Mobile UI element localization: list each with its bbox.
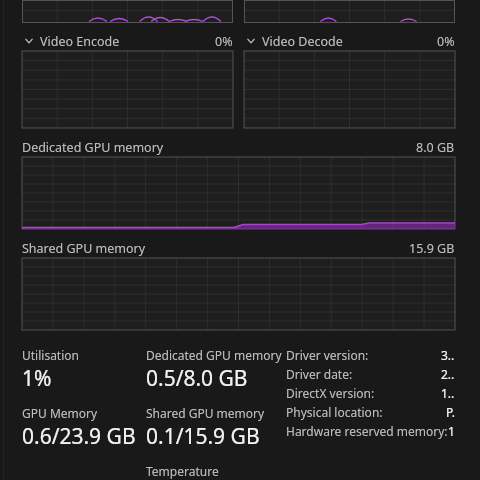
staticText: Temperature [146,463,219,479]
other: Collapse Video Decode [244,34,258,48]
staticText: Shared GPU memory [22,240,146,257]
staticText: DirectX version: [286,385,375,401]
staticText: 1% [22,364,52,393]
other: Collapse Video Encode [22,34,36,48]
button[interactable]: Collapse Video Encode [22,31,233,51]
staticText: P. [446,404,455,420]
staticText: Utilisation [22,347,79,363]
staticText: 1.. [441,385,455,401]
staticText: Dedicated GPU memory [22,139,164,156]
staticText: GPU Memory [22,405,98,421]
staticText: 0.5/8.0 GB [146,364,248,393]
button[interactable]: Collapse Video Decode [244,31,455,51]
staticText: Physical location: [286,404,383,420]
staticText: Video Encode [40,33,120,50]
staticText: 3.. [441,347,455,363]
staticText: 0% [437,33,455,50]
staticText: Driver date: [286,366,353,382]
staticText: Dedicated GPU memory [146,347,282,363]
staticText: 15.9 GB [409,240,455,257]
button[interactable]: Dedicated GPU memory [22,137,455,157]
staticText: 2.. [441,366,455,382]
button[interactable]: Shared GPU memory [22,238,455,258]
staticText: 0.6/23.9 GB [22,422,136,451]
staticText: 1.. [448,423,455,439]
staticText: Shared GPU memory [146,405,265,421]
staticText: Hardware reserved memory: [286,423,448,439]
staticText: Driver version: [286,347,369,363]
staticText: 8.0 GB [416,139,455,156]
staticText: Video Decode [262,33,343,50]
staticText: 0% [215,33,233,50]
staticText: 0.1/15.9 GB [146,422,260,451]
